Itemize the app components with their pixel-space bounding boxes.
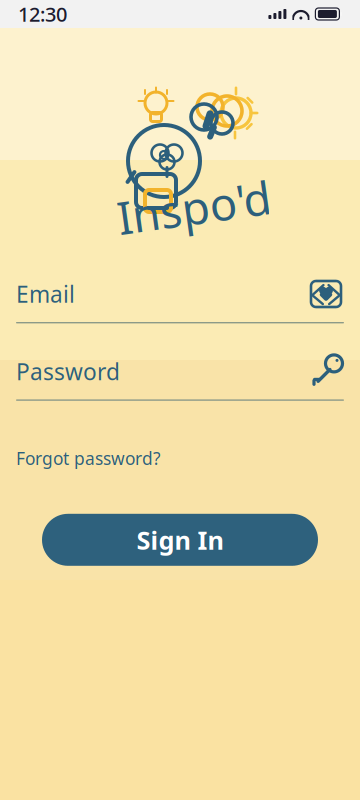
staticText: Forgot password? [16,447,161,470]
staticText: 12:30 [18,1,67,27]
staticText: Password [16,356,120,386]
staticText: Inspo'd [116,177,271,237]
button[interactable]: Forgot password? [16,441,161,476]
button[interactable]: Sign In [42,514,318,566]
staticText: Email [16,279,75,309]
staticText: Sign In [136,523,223,557]
